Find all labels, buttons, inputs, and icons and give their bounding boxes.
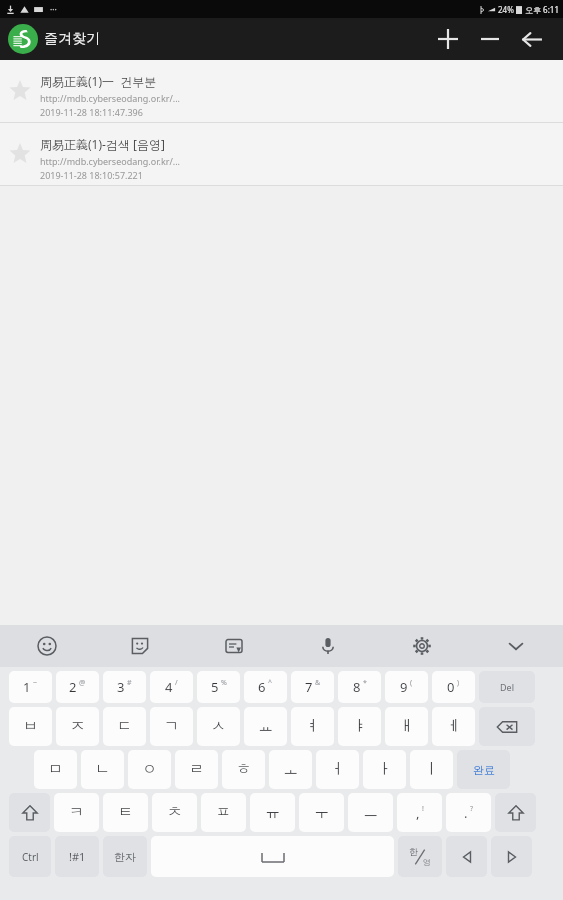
button[interactable]: 0 xyxy=(432,671,475,703)
button[interactable]: ㅊ xyxy=(152,793,197,832)
button[interactable]: 5 xyxy=(197,671,240,703)
button[interactable]: 1 xyxy=(9,671,52,703)
staticText: 24% xyxy=(498,4,514,15)
button[interactable]: Language xyxy=(398,836,442,877)
staticText: ㅐ xyxy=(399,717,414,736)
staticText: ㅡ xyxy=(363,803,378,822)
button[interactable]: Move cursor left xyxy=(446,836,487,877)
staticText: 4 xyxy=(165,678,173,696)
staticText: ^ xyxy=(268,678,273,688)
button[interactable]: ㅡ xyxy=(348,793,393,832)
button[interactable]: 9 xyxy=(385,671,428,703)
button[interactable]: 周易正義(1)一 건부분 xyxy=(0,60,563,122)
button[interactable]: GIF xyxy=(187,625,281,667)
button[interactable]: ㅓ xyxy=(316,750,359,789)
staticText: 한자 xyxy=(114,850,136,864)
button[interactable]: Stickers xyxy=(93,625,187,667)
button[interactable]: ㅋ xyxy=(54,793,99,832)
staticText: ••• xyxy=(50,6,57,14)
button[interactable]: ㅁ xyxy=(34,750,77,789)
staticText: % xyxy=(221,678,227,688)
staticText: ㄴ xyxy=(95,760,110,779)
button[interactable]: . xyxy=(446,793,491,832)
button[interactable]: 한자 xyxy=(103,836,147,877)
button[interactable]: ㅍ xyxy=(201,793,246,832)
staticText: http://mdb.cyberseodang.or.kr/... xyxy=(40,92,181,104)
staticText: Ctrl xyxy=(22,850,39,864)
button[interactable]: Emoji xyxy=(0,625,93,667)
button[interactable]: 완료 xyxy=(457,750,510,789)
button[interactable]: Space xyxy=(151,836,394,877)
button[interactable]: Add xyxy=(427,18,469,60)
button[interactable]: ㅎ xyxy=(222,750,265,789)
button[interactable]: ㅑ xyxy=(338,707,381,746)
staticText: ㅏ xyxy=(377,760,392,779)
button[interactable]: ㅂ xyxy=(9,707,52,746)
button[interactable]: ㅈ xyxy=(56,707,99,746)
button[interactable]: ㄹ xyxy=(175,750,218,789)
button[interactable]: 3 xyxy=(103,671,146,703)
button[interactable]: , xyxy=(397,793,442,832)
staticText: 한 xyxy=(409,846,418,857)
button[interactable]: 7 xyxy=(291,671,334,703)
staticText: ㅜ xyxy=(314,803,329,822)
button[interactable]: ㅜ xyxy=(299,793,344,832)
button[interactable]: Back xyxy=(511,18,553,60)
staticText: 완료 xyxy=(473,763,495,777)
staticText: ㅇ xyxy=(142,760,157,779)
button[interactable]: Hide keyboard xyxy=(469,625,563,667)
staticText: , xyxy=(416,804,420,822)
button[interactable]: 周易正義(1)-검색 [음영] xyxy=(0,123,563,185)
staticText: 7 xyxy=(305,678,313,696)
button[interactable]: ㅕ xyxy=(291,707,334,746)
staticText: ㅔ xyxy=(446,717,461,736)
button[interactable]: Move cursor right xyxy=(491,836,532,877)
staticText: . xyxy=(464,804,468,822)
button[interactable]: ㄴ xyxy=(81,750,124,789)
staticText: ㅊ xyxy=(167,803,182,822)
button[interactable]: ㅗ xyxy=(269,750,312,789)
button[interactable]: ㅛ xyxy=(244,707,287,746)
button[interactable]: !#1 xyxy=(55,836,99,877)
button[interactable]: Shift xyxy=(9,793,50,832)
staticText: Del xyxy=(500,681,514,693)
button[interactable]: ㅇ xyxy=(128,750,171,789)
staticText: ? xyxy=(470,804,474,814)
button[interactable]: 2 xyxy=(56,671,99,703)
staticText: ! xyxy=(422,804,424,814)
staticText: 2019-11-28 18:10:57.221 xyxy=(40,169,143,181)
button[interactable]: ㅠ xyxy=(250,793,295,832)
button[interactable]: ㅅ xyxy=(197,707,240,746)
staticText: 8 xyxy=(353,678,361,696)
staticText: ) xyxy=(457,678,460,688)
button[interactable]: ㅔ xyxy=(432,707,475,746)
button[interactable]: 4 xyxy=(150,671,193,703)
staticText: ㅗ xyxy=(283,760,298,779)
button[interactable]: ㄱ xyxy=(150,707,193,746)
staticText: / xyxy=(175,678,178,688)
staticText: 2019-11-28 18:11:47.396 xyxy=(40,106,143,118)
button[interactable]: Voice input xyxy=(281,625,375,667)
button[interactable]: Shift xyxy=(495,793,536,832)
button[interactable]: ㅣ xyxy=(410,750,453,789)
button[interactable]: Keyboard settings xyxy=(375,625,469,667)
button[interactable]: Ctrl xyxy=(9,836,51,877)
staticText: !#1 xyxy=(69,849,86,864)
staticText: ㅓ xyxy=(330,760,345,779)
staticText: ㅂ xyxy=(23,717,38,736)
button[interactable]: ㅐ xyxy=(385,707,428,746)
staticText: http://mdb.cyberseodang.or.kr/... xyxy=(40,155,181,167)
button[interactable]: ㅏ xyxy=(363,750,406,789)
staticText: # xyxy=(127,678,132,688)
button[interactable]: Delete xyxy=(479,671,535,703)
button[interactable]: Backspace xyxy=(479,707,535,746)
button[interactable]: 8 xyxy=(338,671,381,703)
button[interactable]: 6 xyxy=(244,671,287,703)
staticText: ㅅ xyxy=(211,717,226,736)
button[interactable]: ㅌ xyxy=(103,793,148,832)
button[interactable]: Remove xyxy=(469,18,511,60)
staticText: 오후 6:11 xyxy=(525,4,559,15)
staticText: ㄹ xyxy=(189,760,204,779)
staticText: 2 xyxy=(69,678,77,696)
button[interactable]: ㄷ xyxy=(103,707,146,746)
